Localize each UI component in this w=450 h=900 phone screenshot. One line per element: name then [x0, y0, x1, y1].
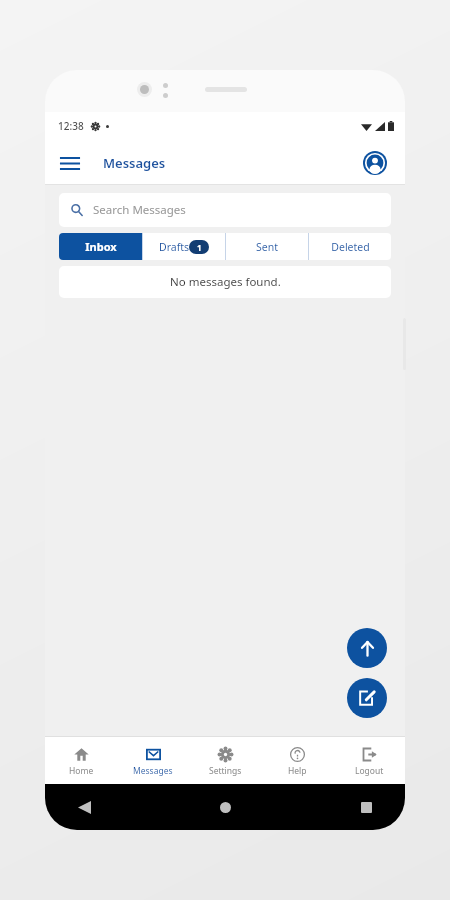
staticText: 1: [197, 242, 202, 253]
button[interactable]: Settings: [189, 740, 261, 784]
staticText: Inbox: [85, 239, 117, 254]
button[interactable]: Back: [67, 790, 101, 824]
staticText: Search Messages: [93, 202, 186, 218]
button[interactable]: Home: [45, 740, 117, 784]
staticText: Deleted: [331, 240, 370, 254]
button[interactable]: Scroll to top: [347, 628, 387, 668]
button[interactable]: Recent apps: [349, 790, 383, 824]
staticText: Drafts: [159, 240, 190, 254]
button[interactable]: Deleted: [309, 233, 391, 260]
button[interactable]: Search Messages: [59, 193, 391, 227]
button[interactable]: Compose message: [347, 678, 387, 718]
button[interactable]: Help: [261, 740, 333, 784]
button[interactable]: Inbox: [59, 233, 142, 260]
staticText: Sent: [256, 240, 278, 254]
button[interactable]: Open navigation menu: [61, 150, 87, 176]
staticText: Messages: [103, 154, 166, 172]
staticText: Settings: [209, 765, 242, 777]
button[interactable]: Logout: [333, 740, 405, 784]
staticText: 12:38: [58, 119, 84, 133]
button[interactable]: Account: [361, 149, 389, 177]
staticText: Logout: [355, 765, 384, 777]
button[interactable]: Home: [208, 790, 242, 824]
button[interactable]: Sent: [226, 233, 308, 260]
staticText: Messages: [133, 765, 173, 777]
staticText: No messages found.: [170, 274, 281, 290]
button[interactable]: Drafts: [143, 233, 225, 260]
staticText: Home: [69, 765, 94, 777]
staticText: Help: [288, 765, 307, 777]
button[interactable]: Messages: [117, 740, 189, 784]
